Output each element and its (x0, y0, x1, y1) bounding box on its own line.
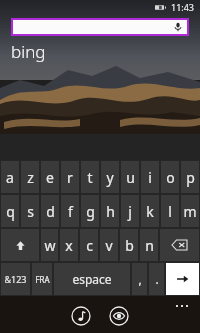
staticText: m (183, 202, 197, 221)
staticText: k (146, 202, 154, 221)
button[interactable]: o (161, 161, 179, 193)
other: Shift (1, 229, 39, 261)
button[interactable]: s (21, 195, 39, 227)
staticText: 11:43 (171, 1, 195, 13)
staticText: y (106, 168, 114, 187)
staticText: f (68, 202, 73, 221)
other: Backspace (160, 229, 199, 261)
staticText: w (44, 236, 56, 255)
button[interactable]: Backspace (160, 229, 199, 261)
button[interactable]: l (161, 195, 179, 227)
staticText: . (155, 271, 159, 287)
staticText: i (148, 168, 152, 187)
button[interactable]: Music search (71, 306, 91, 326)
staticText: h (106, 202, 115, 221)
button[interactable]: b (120, 229, 138, 261)
staticText: d (46, 202, 55, 221)
button[interactable]: p (181, 161, 199, 193)
button[interactable]: t (81, 161, 99, 193)
button[interactable]: y (101, 161, 119, 193)
staticText: q (6, 202, 15, 221)
staticText: e (46, 168, 54, 187)
button[interactable]: r (61, 161, 79, 193)
button[interactable]: z (21, 161, 39, 193)
button[interactable]: Enter (166, 263, 199, 295)
staticText: espace (72, 271, 112, 287)
staticText: u (126, 168, 135, 187)
staticText: s (27, 202, 34, 221)
staticText: g (86, 202, 95, 221)
staticText: b (125, 236, 134, 255)
button[interactable]: i (141, 161, 159, 193)
button[interactable]: espace (54, 263, 130, 295)
button[interactable]: j (121, 195, 139, 227)
button[interactable]: &123 (1, 263, 30, 295)
button[interactable]: k (141, 195, 159, 227)
staticText: n (145, 236, 154, 255)
button[interactable]: w (41, 229, 58, 261)
button[interactable]: d (41, 195, 59, 227)
staticText: o (166, 168, 175, 187)
staticText: , (138, 271, 142, 287)
button[interactable]: Voice search (11, 18, 189, 36)
other: Enter (166, 263, 199, 295)
staticText: p (186, 168, 195, 187)
button[interactable]: v (100, 229, 118, 261)
button[interactable]: , (132, 263, 147, 295)
staticText: c (86, 236, 93, 255)
button[interactable]: Vision search (109, 306, 129, 326)
button[interactable]: u (121, 161, 139, 193)
button[interactable]: e (41, 161, 59, 193)
staticText: &123 (4, 273, 27, 285)
staticText: FRA (35, 274, 50, 285)
button[interactable]: bing (11, 40, 46, 63)
button[interactable]: f (61, 195, 79, 227)
staticText: x (65, 236, 73, 255)
staticText: j (128, 202, 132, 221)
staticText: t (87, 168, 93, 187)
button[interactable]: x (60, 229, 78, 261)
button[interactable]: m (181, 195, 199, 227)
button[interactable]: Voice search (173, 22, 183, 32)
staticText: l (168, 202, 172, 221)
staticText: z (27, 168, 34, 187)
button[interactable]: g (81, 195, 99, 227)
button[interactable]: More options (171, 300, 193, 312)
button[interactable]: . (149, 263, 164, 295)
button[interactable]: n (140, 229, 158, 261)
staticText: v (105, 236, 113, 255)
button[interactable]: a (1, 161, 19, 193)
button[interactable]: FRA (32, 263, 52, 295)
button[interactable]: c (80, 229, 98, 261)
staticText: a (6, 168, 14, 187)
button[interactable]: Shift (1, 229, 39, 261)
button[interactable]: q (1, 195, 19, 227)
staticText: r (67, 168, 73, 187)
button[interactable]: h (101, 195, 119, 227)
